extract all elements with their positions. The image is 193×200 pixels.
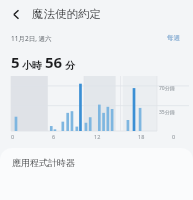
staticText: 5 xyxy=(11,52,20,72)
staticText: 分 xyxy=(65,59,75,72)
staticText: 35分鐘 xyxy=(159,109,175,116)
staticText: 70分鐘 xyxy=(159,85,175,92)
staticText: 18 xyxy=(138,133,145,140)
staticText: 11月2日, 週六 xyxy=(11,34,52,43)
staticText: 0 xyxy=(11,133,15,140)
button[interactable]: 應用程式計時器 xyxy=(0,148,193,200)
staticText: 應用程式計時器 xyxy=(12,157,75,168)
staticText: 6 xyxy=(52,133,56,140)
button[interactable]: 每週 xyxy=(165,33,182,43)
button[interactable]: Back xyxy=(6,4,26,24)
staticText: 每週 xyxy=(167,34,180,42)
staticText: 56 xyxy=(45,52,63,72)
staticText: 0 xyxy=(172,133,176,140)
staticText: 魔法使的約定 xyxy=(32,7,101,21)
staticText: 12 xyxy=(94,133,101,140)
staticText: 小時 xyxy=(22,59,42,72)
